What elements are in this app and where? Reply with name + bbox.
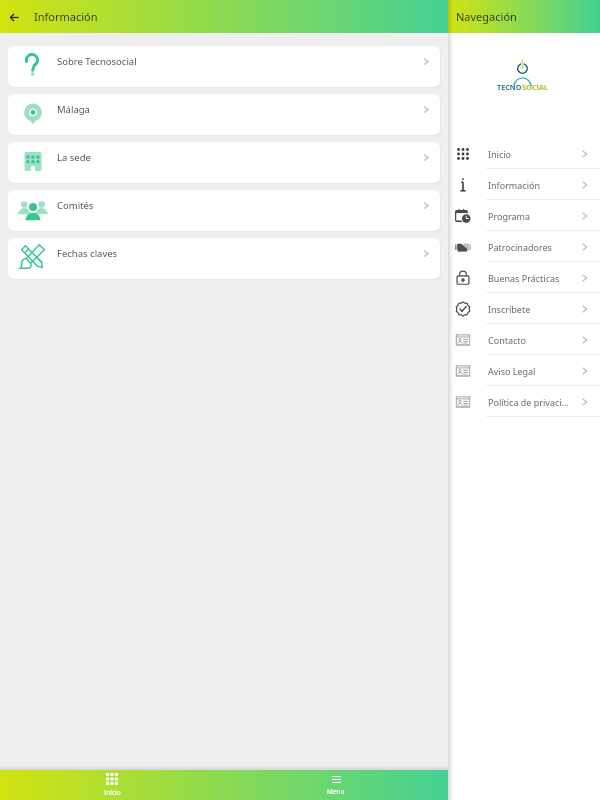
button[interactable]: Inicio xyxy=(0,770,224,800)
staticText: Información xyxy=(34,9,98,24)
button[interactable]: Comités xyxy=(8,190,440,231)
button[interactable]: Política de privaci… xyxy=(448,386,600,417)
button[interactable]: Sobre Tecnosocial xyxy=(8,46,440,87)
staticText: TECNO xyxy=(497,82,522,92)
button[interactable]: Información xyxy=(448,169,600,200)
button[interactable]: La sede xyxy=(8,142,440,183)
button[interactable]: Menu xyxy=(224,770,448,800)
staticText: Comités xyxy=(57,199,94,212)
button[interactable]: Programa xyxy=(448,200,600,231)
button[interactable]: Patrocinadores xyxy=(448,231,600,262)
button[interactable]: Málaga xyxy=(8,94,440,135)
staticText: Menu xyxy=(327,787,345,796)
button[interactable]: Aviso Legal xyxy=(448,355,600,386)
button[interactable]: Back xyxy=(4,7,24,27)
staticText: La sede xyxy=(57,151,91,164)
staticText: Inscríbete xyxy=(488,303,578,315)
button[interactable]: Inicio xyxy=(448,138,600,169)
staticText: Navegación xyxy=(456,9,517,24)
button[interactable]: Buenas Prácticas xyxy=(448,262,600,293)
staticText: Aviso Legal xyxy=(488,365,578,377)
button[interactable]: Inscríbete xyxy=(448,293,600,324)
button[interactable]: Contacto xyxy=(448,324,600,355)
staticText: Información xyxy=(488,179,578,191)
staticText: SOCIAL xyxy=(522,82,549,92)
staticText: Programa xyxy=(488,210,578,222)
staticText: Patrocinadores xyxy=(488,241,578,253)
staticText: Sobre Tecnosocial xyxy=(57,55,137,68)
staticText: Política de privaci… xyxy=(488,396,578,408)
staticText: Inicio xyxy=(488,148,578,160)
staticText: Contacto xyxy=(488,334,578,346)
staticText: Fechas claves xyxy=(57,247,118,260)
staticText: Málaga xyxy=(57,103,90,116)
staticText: Buenas Prácticas xyxy=(488,272,578,284)
button[interactable]: Fechas claves xyxy=(8,238,440,279)
staticText: Inicio xyxy=(104,788,121,797)
